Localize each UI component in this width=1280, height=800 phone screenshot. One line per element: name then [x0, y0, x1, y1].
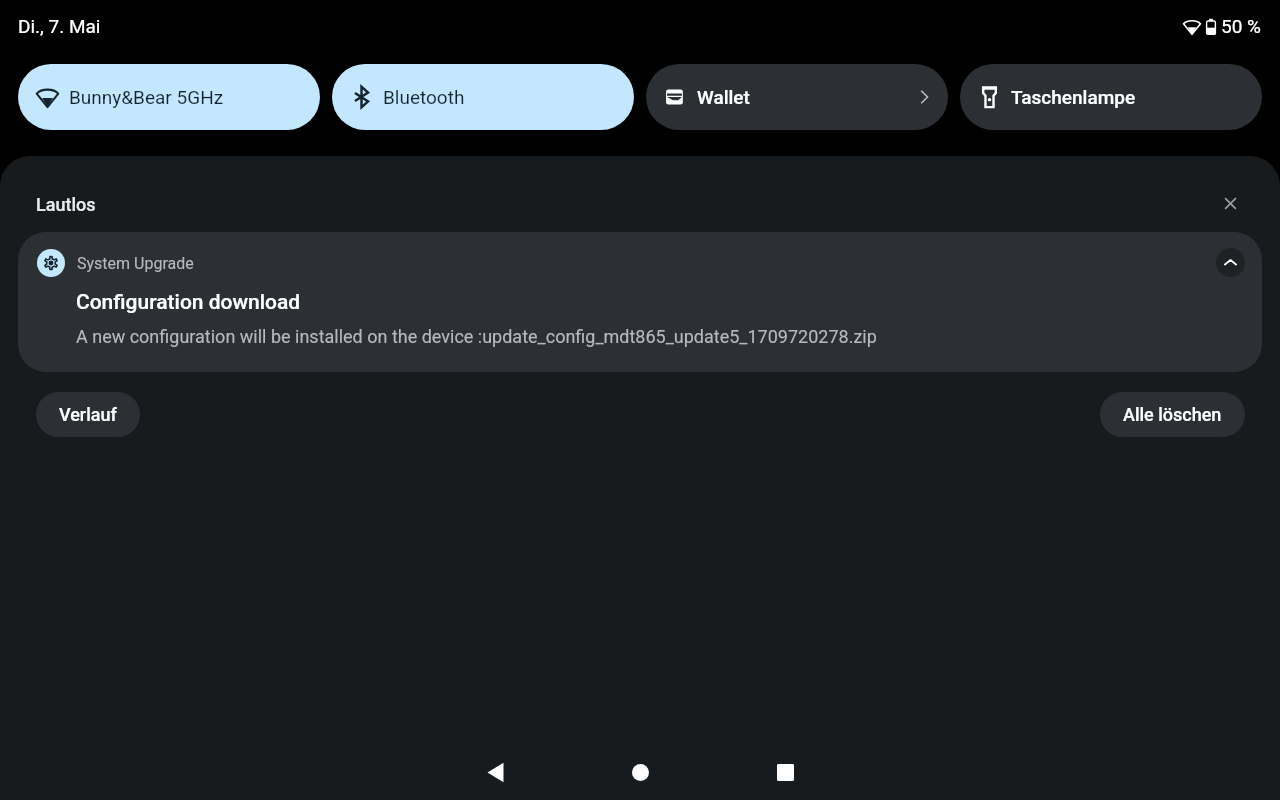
button[interactable]: Wallet [646, 64, 948, 130]
staticText: Verlauf [59, 404, 117, 425]
staticText: Bunny&Bear 5GHz [69, 86, 224, 108]
staticText: Lautlos [36, 194, 96, 215]
button[interactable]: Lautlose Benachrichtigungen schließen [1210, 183, 1250, 223]
staticText: Di., 7. Mai [18, 15, 101, 37]
staticText: System Upgrade [77, 254, 194, 273]
button[interactable]: Bunny&Bear 5GHz [18, 64, 320, 130]
button[interactable]: Verlauf [36, 392, 140, 437]
staticText: Configuration download [76, 290, 301, 315]
button[interactable]: Alle löschen [1100, 392, 1245, 437]
button[interactable]: Übersicht [749, 744, 821, 800]
button[interactable]: Zurück [459, 744, 531, 800]
staticText: Wallet [697, 86, 750, 108]
staticText: A new configuration will be installed on… [76, 326, 877, 347]
button[interactable]: Bluetooth [332, 64, 634, 130]
staticText: Bluetooth [383, 86, 465, 108]
staticText: Taschenlampe [1011, 86, 1136, 108]
button[interactable]: Taschenlampe [960, 64, 1262, 130]
button[interactable]: Benachrichtigung einklappen [1216, 248, 1245, 277]
button[interactable]: Startbildschirm [604, 744, 676, 800]
staticText: Alle löschen [1123, 404, 1222, 425]
staticText: 50 % [1221, 15, 1261, 37]
button[interactable]: System Upgrade [18, 232, 1262, 372]
